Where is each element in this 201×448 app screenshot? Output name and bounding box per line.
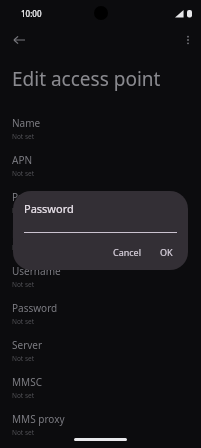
staticText: Not set bbox=[12, 354, 35, 363]
staticText: Not set bbox=[12, 280, 35, 289]
button[interactable]: Back bbox=[8, 29, 30, 51]
button[interactable]: More options bbox=[177, 29, 199, 51]
button[interactable]: MMS proxy bbox=[0, 406, 201, 443]
staticText: Not set bbox=[12, 206, 35, 215]
staticText: MMSC bbox=[12, 375, 42, 389]
button[interactable]: Name bbox=[0, 110, 201, 147]
staticText: Not set bbox=[12, 391, 35, 400]
staticText: OK bbox=[160, 246, 173, 258]
button[interactable]: Username bbox=[0, 258, 201, 295]
staticText: Password bbox=[12, 301, 58, 315]
staticText: Not set bbox=[12, 169, 35, 178]
staticText: Username bbox=[12, 264, 61, 278]
button[interactable]: Port bbox=[0, 221, 201, 258]
staticText: Proxy bbox=[12, 190, 39, 204]
button[interactable]: OK bbox=[153, 243, 180, 261]
staticText: Edit access point bbox=[12, 66, 161, 92]
staticText: Password bbox=[24, 201, 74, 216]
button[interactable]: Proxy bbox=[0, 184, 201, 221]
button[interactable]: APN bbox=[0, 147, 201, 184]
staticText: APN bbox=[12, 153, 33, 167]
staticText: MMS proxy bbox=[12, 412, 65, 426]
staticText: 10:00 bbox=[21, 8, 42, 19]
staticText: Not set bbox=[12, 317, 35, 326]
staticText: Name bbox=[12, 116, 41, 130]
button[interactable]: MMSC bbox=[0, 369, 201, 406]
staticText: Not set bbox=[12, 132, 35, 141]
staticText: Cancel bbox=[113, 246, 142, 258]
button[interactable]: Password bbox=[0, 295, 201, 332]
button[interactable]: Cancel bbox=[106, 243, 149, 261]
staticText: Not set bbox=[12, 243, 35, 252]
staticText: Not set bbox=[12, 428, 35, 437]
staticText: Server bbox=[12, 338, 43, 352]
staticText: Port bbox=[12, 227, 32, 241]
button[interactable]: Server bbox=[0, 332, 201, 369]
